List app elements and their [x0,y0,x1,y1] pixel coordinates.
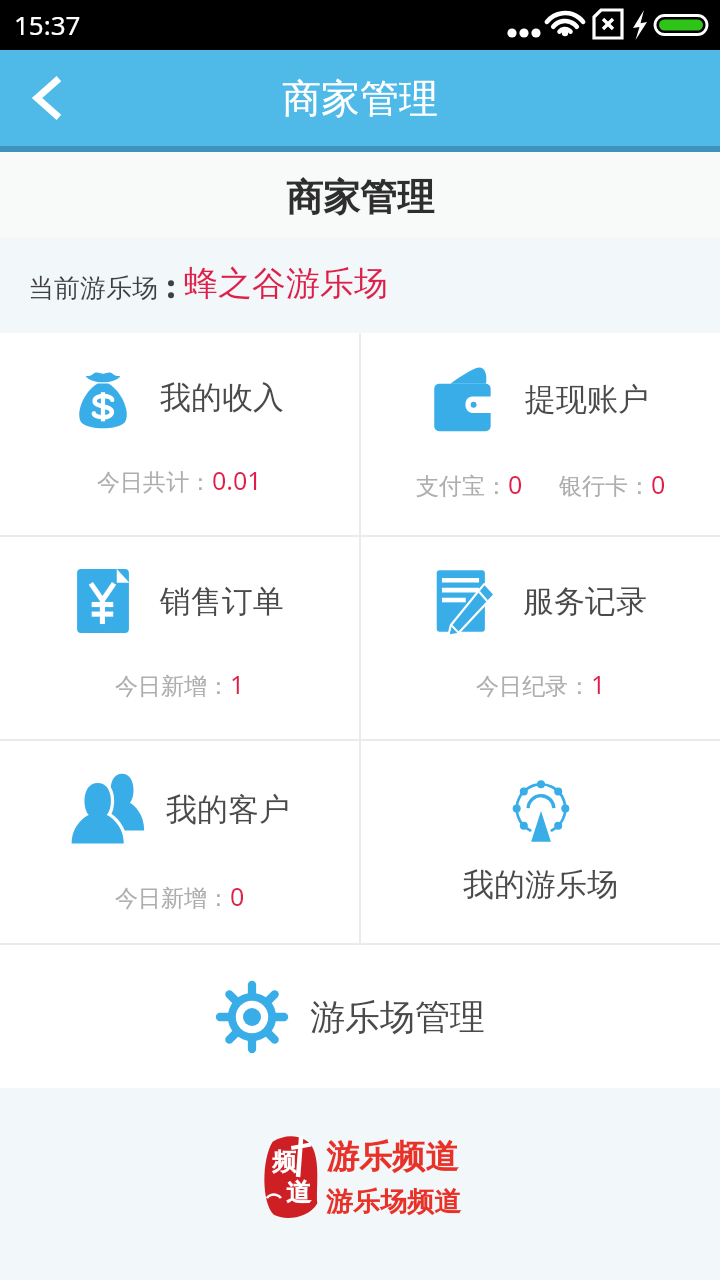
button[interactable]: 我的收入 [0,333,359,497]
staticText: 1 [591,667,606,701]
button[interactable]: 提现账户 [361,333,720,501]
staticText: 服务记录 [523,582,647,621]
staticText: 频 [272,1147,296,1177]
staticText: 销售订单 [160,582,284,621]
staticText: 蜂之谷游乐场 [184,262,388,305]
staticText: 0 [508,467,523,501]
staticText: 今日共计： [97,468,212,497]
staticText: 银行卡： [559,472,651,501]
staticText: 1 [230,667,245,701]
staticText: 提现账户 [525,380,649,419]
staticText: 游乐频道 [326,1136,458,1178]
staticText: 游乐场频道 [326,1185,461,1219]
button[interactable]: Back [0,50,96,146]
staticText: 游乐场管理 [310,995,485,1039]
staticText: 当前游乐场 [28,272,158,305]
staticText: 0 [230,879,245,913]
staticText: 今日新增： [115,672,230,701]
staticText: 今日纪录： [476,672,591,701]
staticText: 我的游乐场 [463,865,618,904]
staticText: 今日新增： [115,884,230,913]
staticText: 我的收入 [160,378,284,417]
staticText: 支付宝： [416,472,508,501]
button[interactable]: 服务记录 [361,537,720,701]
staticText: 商家管理 [286,174,434,221]
button[interactable]: 销售订单 [0,537,359,701]
button[interactable]: 游乐场管理 [0,945,720,1088]
staticText: 商家管理 [282,74,438,123]
staticText: 0 [651,467,666,501]
staticText: 道 [286,1177,311,1208]
staticText: 0.01 [212,463,262,497]
button[interactable]: 我的客户 [0,741,359,913]
button[interactable]: 我的游乐场 [361,741,720,943]
staticText: 15:37 [14,7,81,42]
staticText: 我的客户 [166,790,290,829]
